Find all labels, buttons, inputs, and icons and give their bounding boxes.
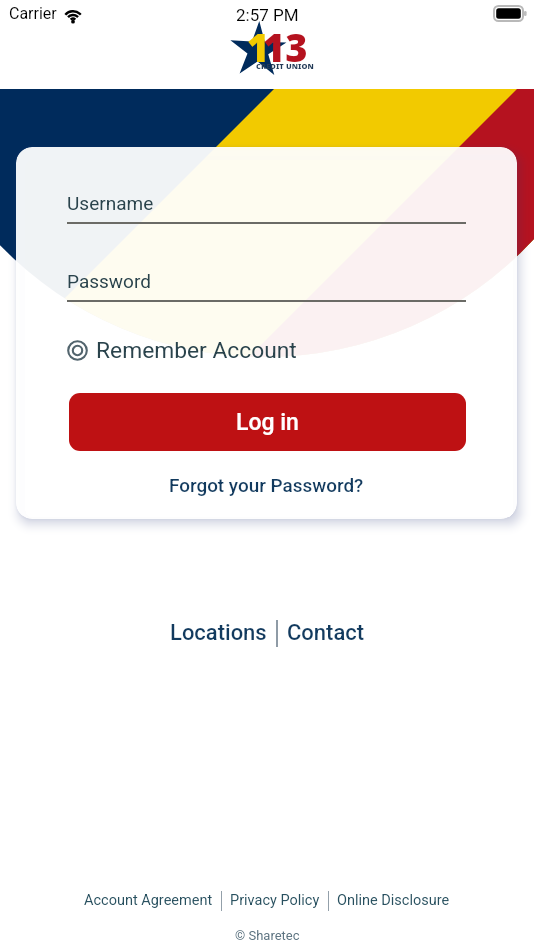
button[interactable]: Forgot your Password? (161, 469, 372, 501)
button[interactable]: Password (67, 270, 466, 302)
staticText: Carrier (9, 4, 57, 23)
other: Wifi signal (62, 6, 84, 23)
button[interactable]: Online Disclosure (329, 890, 458, 911)
staticText: © Sharetec (235, 928, 300, 943)
button[interactable]: Log in (69, 393, 466, 451)
staticText: Password (67, 270, 151, 292)
staticText: 2:57 PM (236, 5, 299, 25)
other: Battery full (494, 6, 528, 21)
staticText: Remember Account (96, 337, 297, 364)
button[interactable]: Locations (161, 616, 276, 650)
button[interactable]: Username (67, 192, 466, 224)
button[interactable]: Privacy Policy (222, 890, 328, 911)
staticText: 1 (247, 21, 270, 73)
button[interactable]: Remember Account (67, 337, 297, 364)
button[interactable]: Contact (278, 616, 374, 650)
staticText: Username (67, 192, 154, 214)
staticText: Log in (236, 409, 299, 436)
button[interactable]: Account Agreement (76, 890, 221, 911)
staticText: CREDIT UNION (256, 61, 314, 71)
staticText: 13 (263, 21, 308, 73)
